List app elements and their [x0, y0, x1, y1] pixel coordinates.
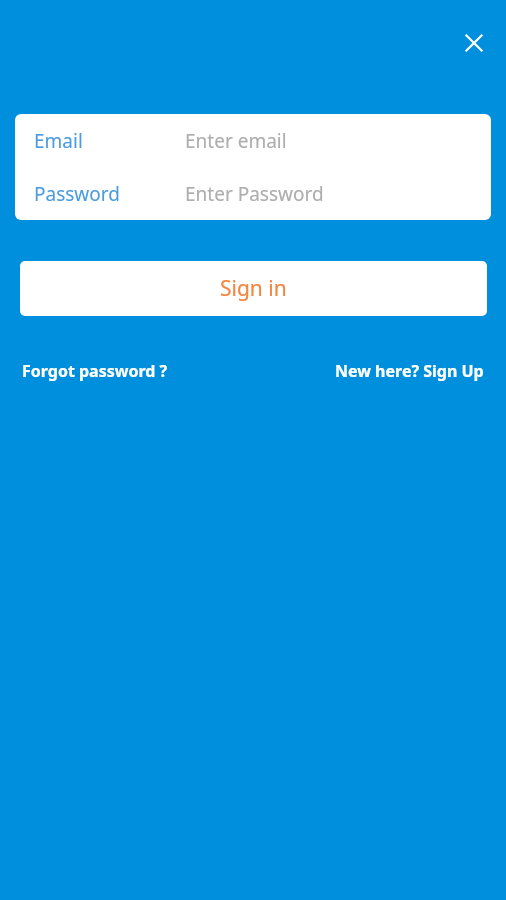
- staticText: Sign in: [220, 274, 287, 303]
- staticText: Password: [34, 181, 120, 207]
- button[interactable]: Sign in: [20, 261, 487, 316]
- staticText: Forgot password ?: [22, 360, 168, 382]
- staticText: New here? Sign Up: [335, 360, 484, 382]
- staticText: Enter email: [185, 128, 287, 154]
- button[interactable]: Email: [15, 114, 491, 167]
- button[interactable]: New here? Sign Up: [333, 356, 486, 386]
- button[interactable]: Forgot password ?: [20, 356, 170, 386]
- staticText: Enter Password: [185, 181, 324, 207]
- button[interactable]: Close: [452, 21, 496, 65]
- staticText: Email: [34, 128, 83, 154]
- button[interactable]: Password: [15, 167, 491, 220]
